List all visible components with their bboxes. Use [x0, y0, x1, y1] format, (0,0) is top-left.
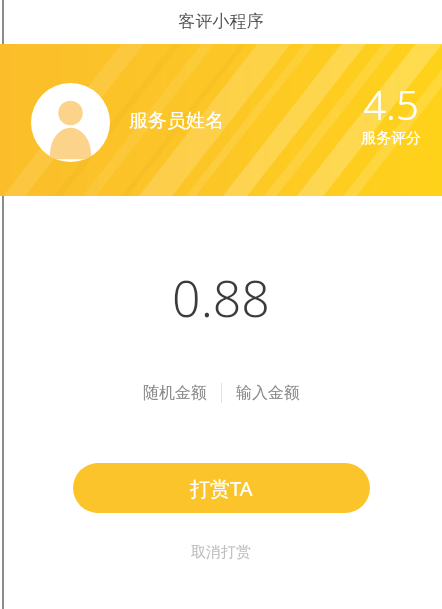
staticText: 4.5 — [352, 77, 430, 131]
button[interactable]: 取消打赏 — [171, 537, 271, 568]
other: Avatar — [31, 83, 110, 162]
staticText: 打赏TA — [190, 475, 253, 502]
staticText: 取消打赏 — [191, 543, 251, 562]
staticText: 随机金额 — [143, 383, 207, 403]
staticText: 输入金额 — [236, 383, 300, 403]
staticText: 服务员姓名 — [129, 109, 224, 133]
button[interactable]: 随机金额 — [129, 379, 221, 407]
button[interactable]: 输入金额 — [222, 379, 314, 407]
staticText: 客评小程序 — [0, 11, 442, 32]
staticText: 0.88 — [0, 264, 442, 332]
staticText: 服务评分 — [352, 129, 430, 148]
button[interactable]: 打赏TA — [73, 463, 370, 513]
